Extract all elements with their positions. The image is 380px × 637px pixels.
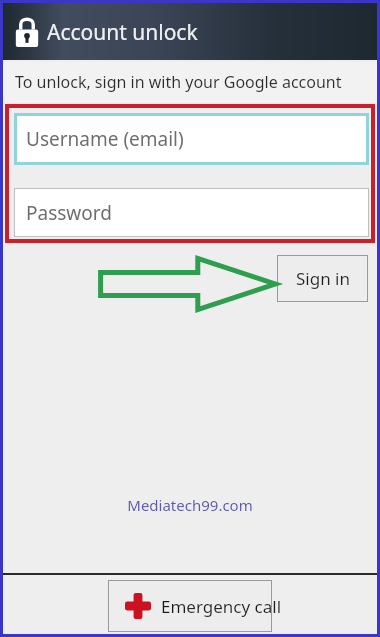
staticText: Mediatech99.com <box>127 495 253 515</box>
button[interactable]: Sign in <box>277 255 368 302</box>
staticText: To unlock, sign in with your Google acco… <box>15 71 342 93</box>
button[interactable]: Emergency call <box>108 580 272 632</box>
button[interactable]: Password <box>14 188 369 237</box>
button[interactable]: Username (email) <box>14 113 369 165</box>
staticText: Username (email) <box>26 126 184 152</box>
staticText: Emergency call <box>161 595 282 618</box>
staticText: Account unlock <box>47 18 198 47</box>
staticText: Sign in <box>296 267 350 290</box>
staticText: Password <box>26 200 112 226</box>
